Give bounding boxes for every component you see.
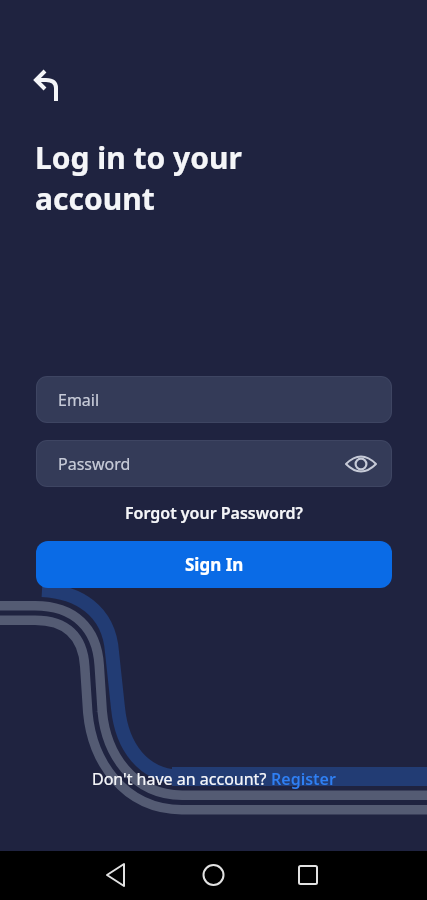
button[interactable] [285, 851, 427, 900]
button[interactable]: Register [271, 768, 336, 790]
staticText: Email [58, 389, 100, 411]
button[interactable] [143, 851, 285, 900]
staticText: Password [58, 453, 131, 475]
staticText: Don't have an account? [92, 768, 271, 790]
button[interactable] [26, 60, 68, 108]
staticText: Log in to your account [35, 137, 242, 219]
button[interactable]: Forgot your Password? [125, 502, 303, 524]
button[interactable]: Email [36, 376, 392, 423]
button[interactable]: Sign In [36, 541, 392, 588]
staticText: Sign In [185, 553, 244, 576]
button[interactable] [336, 440, 392, 487]
button[interactable] [0, 851, 143, 900]
button[interactable]: Password [36, 440, 392, 487]
